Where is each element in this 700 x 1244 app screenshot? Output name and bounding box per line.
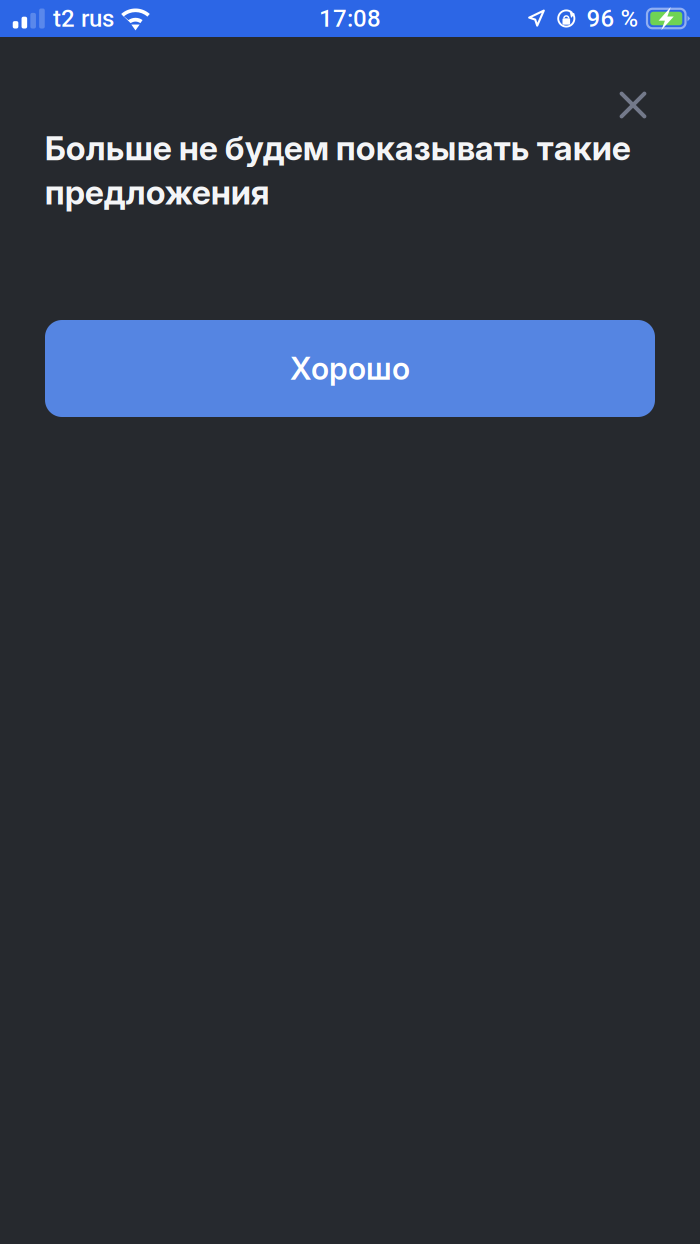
staticText: t2 rus [53,4,114,32]
staticText: Хорошо [290,350,410,387]
staticText: 96 % [586,4,638,32]
button[interactable]: Хорошо [45,320,655,417]
staticText: Больше не будем показывать такие предлож… [45,128,631,213]
staticText: 17:08 [319,4,381,32]
button[interactable]: Close [610,82,656,128]
